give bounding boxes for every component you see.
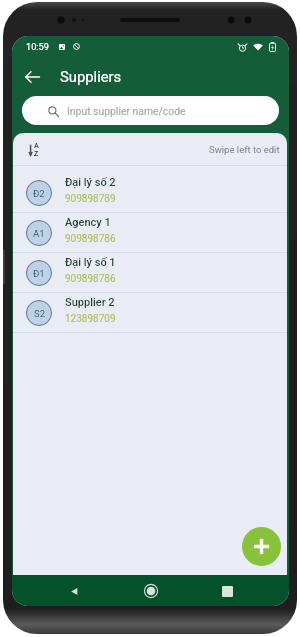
button[interactable]: Recent apps: [212, 576, 242, 606]
staticText: Swipe left to edit: [209, 144, 280, 155]
staticText: 909898786: [65, 233, 116, 245]
button[interactable]: Home: [136, 576, 166, 606]
button[interactable]: Back: [19, 63, 46, 90]
staticText: Suppliers: [60, 68, 122, 85]
staticText: S2: [34, 308, 45, 319]
button[interactable]: A1: [13, 213, 287, 253]
staticText: 909898789: [65, 193, 116, 205]
staticText: Agency 1: [65, 216, 111, 229]
staticText: Z: [34, 150, 39, 158]
staticText: Đ2: [33, 188, 45, 199]
staticText: 123898709: [65, 313, 116, 325]
staticText: 10:59: [26, 41, 49, 52]
button[interactable]: Back: [59, 576, 89, 606]
staticText: Đại lý số 2: [65, 176, 116, 189]
button[interactable]: Sort A to Z: [21, 137, 47, 163]
button[interactable]: Đ2: [13, 173, 287, 213]
staticText: A: [34, 142, 39, 150]
staticText: Input supplier name/code: [67, 105, 186, 117]
button[interactable]: Input supplier name/code: [22, 96, 279, 125]
button[interactable]: Add supplier: [242, 527, 281, 566]
staticText: A1: [33, 228, 45, 239]
button[interactable]: Đ1: [13, 253, 287, 293]
staticText: Đại lý số 1: [65, 256, 116, 269]
button[interactable]: S2: [13, 293, 287, 333]
staticText: 909898786: [65, 273, 116, 285]
staticText: Đ1: [33, 268, 45, 279]
staticText: Supplier 2: [65, 296, 115, 309]
